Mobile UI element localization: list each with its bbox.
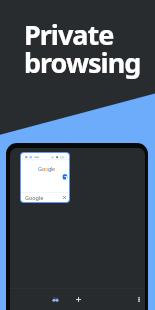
staticText: o [42,165,45,172]
staticText: Private browsing [24,16,141,81]
button[interactable]: Incognito tabs [49,293,61,305]
button[interactable]: More options [133,293,145,305]
staticText: l [51,165,52,172]
staticText: Google [25,194,44,201]
staticText: G [38,165,42,172]
button[interactable]: New tab [72,293,84,305]
staticText: g [48,165,51,172]
button[interactable]: G [20,152,70,203]
staticText: e [52,165,55,172]
staticText: o [45,165,48,172]
